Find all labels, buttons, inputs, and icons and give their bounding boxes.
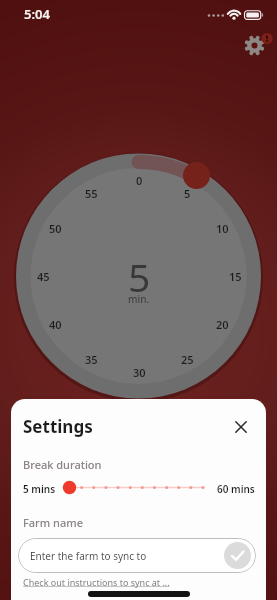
staticText: 40 bbox=[49, 317, 62, 332]
staticText: Check out instructions to sync at ... bbox=[23, 576, 170, 588]
button[interactable] bbox=[224, 542, 251, 569]
button[interactable]: Enter the farm to sync to bbox=[18, 538, 256, 573]
staticText: Settings bbox=[23, 415, 93, 438]
staticText: 50 bbox=[49, 221, 62, 236]
staticText: 5 bbox=[184, 186, 191, 201]
button[interactable]: Check out instructions to sync at ... bbox=[23, 576, 170, 588]
button[interactable] bbox=[59, 477, 209, 498]
staticText: 60 mins bbox=[217, 482, 255, 496]
staticText: 5 bbox=[128, 250, 151, 303]
staticText: min. bbox=[128, 292, 150, 306]
staticText: 25 bbox=[181, 352, 194, 367]
staticText: 10 bbox=[216, 221, 229, 236]
staticText: Enter the farm to sync to bbox=[30, 549, 147, 563]
staticText: 20 bbox=[216, 317, 229, 332]
staticText: 0 bbox=[136, 173, 143, 188]
staticText: Break duration bbox=[23, 457, 102, 472]
staticText: 55 bbox=[85, 186, 98, 201]
staticText: 45 bbox=[37, 269, 50, 284]
staticText: 5:04 bbox=[24, 5, 50, 23]
button[interactable] bbox=[231, 417, 251, 437]
staticText: 35 bbox=[85, 352, 98, 367]
staticText: Farm name bbox=[23, 515, 83, 530]
staticText: 15 bbox=[229, 269, 242, 284]
button[interactable] bbox=[241, 31, 273, 63]
staticText: 30 bbox=[133, 365, 146, 380]
staticText: 5 mins bbox=[23, 482, 56, 496]
